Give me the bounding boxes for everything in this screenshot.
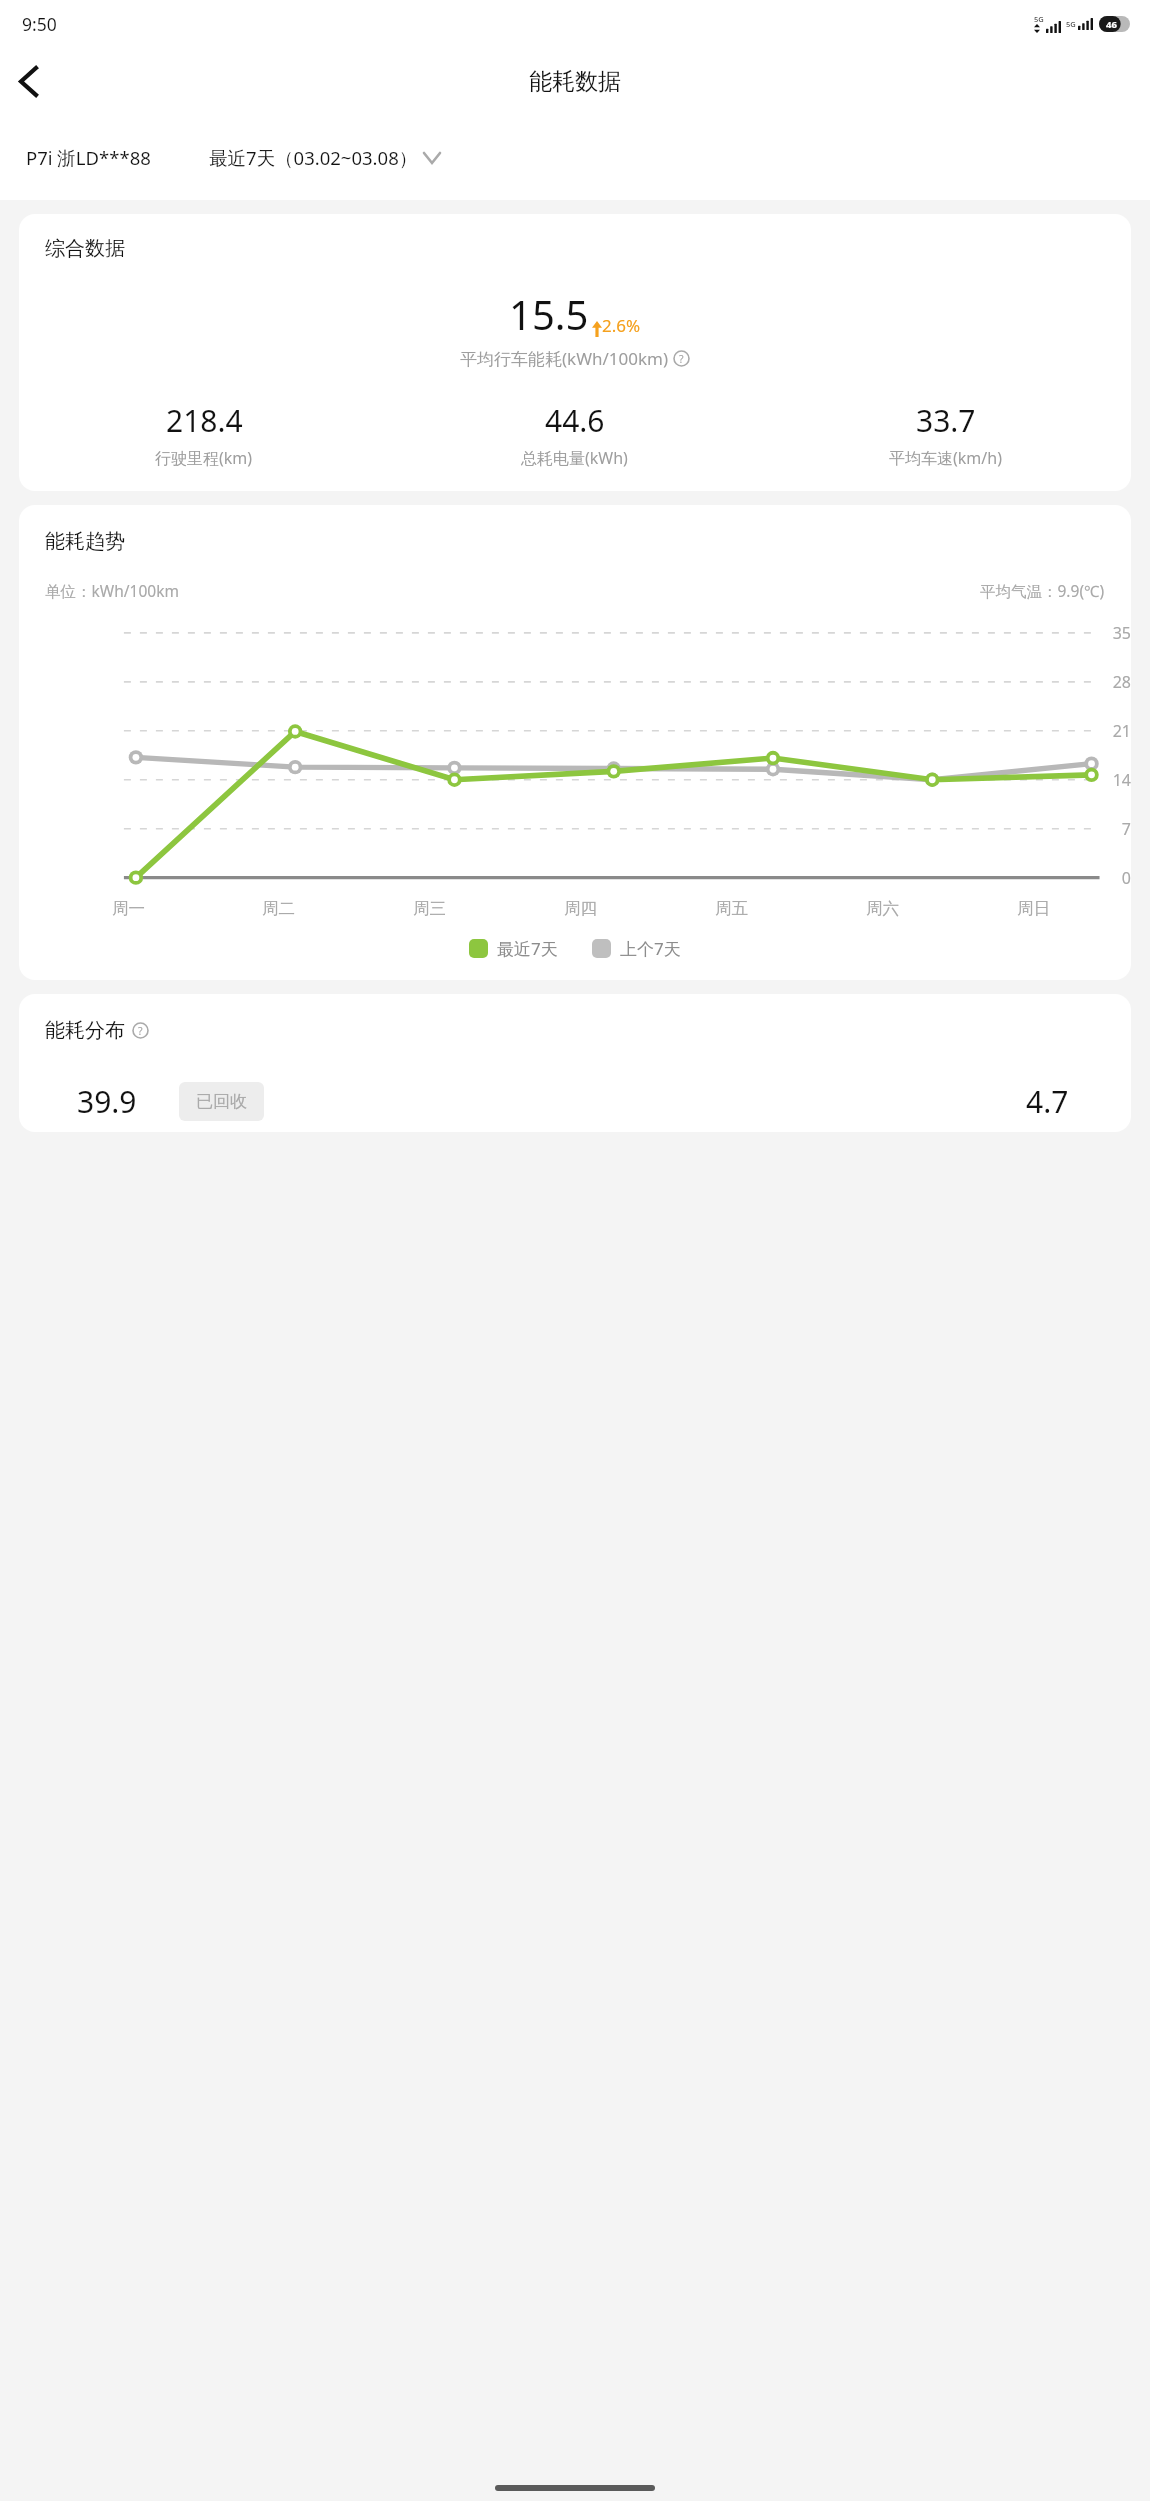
button[interactable]: 上个7天 — [592, 937, 681, 960]
staticText: 上个7天 — [620, 937, 681, 960]
staticText: 平均行车能耗(kWh/100km) — [460, 347, 669, 370]
button[interactable]: 218.4 — [19, 400, 389, 469]
staticText: 能耗趋势 — [45, 529, 125, 554]
staticText: 9:50 — [22, 12, 57, 36]
button[interactable]: 33.7 — [760, 400, 1131, 469]
staticText: 周五 — [715, 898, 748, 919]
staticText: 单位：kWh/100km — [45, 580, 179, 601]
staticText: 14 — [37, 769, 1131, 791]
staticText: 最近7天 — [497, 937, 558, 960]
staticText: 总耗电量(kWh) — [521, 447, 628, 469]
staticText: ? — [138, 1024, 143, 1038]
staticText: 35 — [37, 622, 1131, 644]
staticText: 周六 — [866, 898, 899, 919]
staticText: 周四 — [564, 898, 597, 919]
staticText: 综合数据 — [45, 236, 125, 261]
staticText: 周一 — [112, 898, 145, 919]
staticText: 平均气温：9.9(℃) — [980, 580, 1105, 601]
staticText: 44.6 — [545, 400, 605, 441]
button[interactable]: 最近7天（03.02~03.08） — [209, 145, 440, 170]
staticText: 周二 — [262, 898, 295, 919]
staticText: 2.6% — [602, 314, 641, 337]
staticText: 周日 — [1017, 898, 1050, 919]
staticText: 4.7 — [1026, 1081, 1069, 1122]
staticText: 21 — [37, 720, 1131, 742]
button[interactable]: 44.6 — [389, 400, 760, 469]
staticText: 能耗分布 — [45, 1018, 125, 1043]
staticText: 15.5 — [509, 287, 589, 341]
staticText: 46 — [1106, 18, 1117, 31]
staticText: 已回收 — [196, 1091, 247, 1112]
staticText: 28 — [37, 671, 1131, 693]
staticText: 7 — [37, 818, 1131, 840]
staticText: 周三 — [413, 898, 446, 919]
staticText: 33.7 — [916, 400, 976, 441]
staticText: 218.4 — [166, 400, 243, 441]
staticText: 能耗数据 — [529, 67, 621, 96]
staticText: 最近7天（03.02~03.08） — [209, 145, 418, 170]
staticText: P7i 浙LD***88 — [26, 145, 151, 170]
staticText: ? — [679, 352, 684, 366]
button[interactable]: 最近7天 — [469, 937, 558, 960]
staticText: 5G — [1066, 19, 1076, 29]
staticText: 行驶里程(km) — [155, 447, 253, 469]
button[interactable]: Back — [0, 53, 56, 109]
staticText: 39.9 — [77, 1081, 137, 1122]
staticText: 5G — [1034, 14, 1044, 24]
staticText: 平均车速(km/h) — [889, 447, 1002, 469]
staticText: 0 — [37, 867, 1131, 889]
